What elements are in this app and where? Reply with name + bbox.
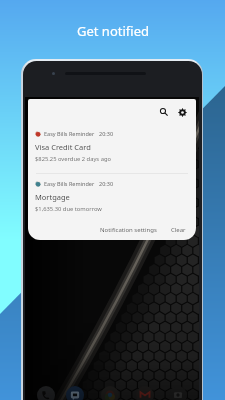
button[interactable]: Easy Bills Reminder [28,125,196,169]
staticText: $825.25 overdue 2 days ago [35,155,111,163]
staticText: Visa Credit Card [35,142,91,152]
staticText: $1,635.30 due tomorrow [35,205,102,213]
button[interactable]: Camera [169,386,187,400]
staticText: Get notified [77,22,149,40]
button[interactable]: Easy Bills Reminder [28,175,196,219]
staticText: Easy Bills Reminder [44,130,95,137]
staticText: Notification settings [100,226,157,234]
button[interactable]: Clear [167,223,190,237]
button[interactable]: Chrome [101,386,119,400]
button[interactable]: Gmail [136,386,154,400]
staticText: 20:30 [99,130,114,137]
button[interactable]: Search [157,105,171,119]
staticText: Clear [171,226,186,234]
staticText: Easy Bills Reminder [44,180,95,187]
button[interactable]: Notification settings [96,223,161,237]
staticText: Mortgage [35,192,70,202]
staticText: 20:30 [99,180,114,187]
button[interactable]: Settings [175,105,189,119]
button[interactable]: Phone [37,386,55,400]
button[interactable]: Messages [66,386,84,400]
